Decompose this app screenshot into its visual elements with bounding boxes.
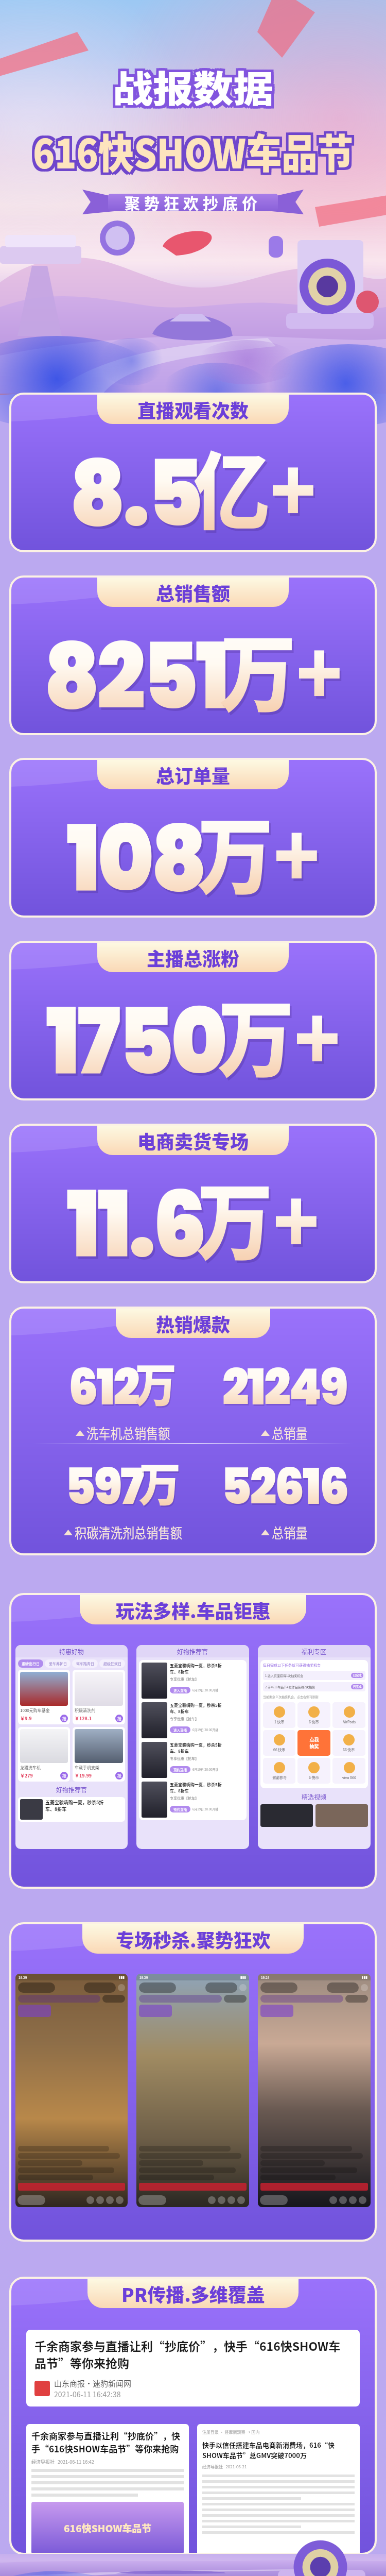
staticText: 战报数据 — [113, 60, 274, 113]
staticText: 万+ — [199, 792, 322, 914]
staticText: 万 — [139, 1448, 181, 1515]
staticText: 19:29 — [19, 1975, 27, 1979]
staticText: 616快SHOW车品节 — [36, 122, 356, 180]
staticText: 万 — [140, 1450, 182, 1516]
staticText: 专享优惠【抢车】 — [170, 1795, 199, 1801]
staticText: 战报数据 — [110, 62, 271, 115]
staticText: 108 — [68, 798, 206, 917]
staticText: 战报数据 — [113, 62, 274, 115]
staticText: 主播总涨粉 — [147, 944, 240, 971]
staticText: 注册登录 · 经摩斯观察 → 国内 — [202, 2429, 260, 2435]
staticText: 21249 — [223, 1353, 348, 1423]
staticText: 万 — [136, 1350, 178, 1417]
staticText: vivo X60 — [342, 1775, 356, 1780]
staticText: 专享优惠【抢车】 — [170, 1716, 199, 1721]
staticText: 福利专区 — [302, 1647, 327, 1656]
staticText: 进入直播 — [173, 1688, 187, 1692]
staticText: 616快SHOW车品节 — [36, 120, 356, 178]
staticText: 总订单量 — [156, 761, 231, 788]
staticText: 五菱宝骏嗨购一夏，秒杀5折 — [170, 1663, 222, 1669]
staticText: 积碳清洗剂 — [75, 1707, 95, 1714]
staticText: 19:29 — [261, 1975, 270, 1979]
staticText: 五菱宝骏嗨购一夏，秒杀5折 — [45, 1799, 104, 1806]
staticText: 597 — [65, 1451, 143, 1521]
staticText: 车、8折车 — [170, 1669, 189, 1675]
staticText: 战报数据 — [115, 60, 277, 113]
staticText: 经济导报社 2021-06-21 — [202, 2464, 247, 2470]
staticText: 爱车养护日 — [49, 1661, 67, 1666]
staticText: AirPods — [343, 1719, 356, 1724]
staticText: 好物推荐官 — [56, 1785, 87, 1794]
staticText: 车载手机支架 — [75, 1765, 99, 1771]
staticText: ￥128.1 — [75, 1715, 92, 1722]
staticText: ▮▮▮ — [119, 1975, 125, 1979]
staticText: 1.进入页面获得1次抽奖机会 — [265, 1673, 351, 1678]
staticText: 已完成 — [353, 1685, 362, 1689]
staticText: 每日完成以下任务就可获得抽奖机会 — [263, 1663, 321, 1668]
staticText: 进入直播 — [173, 1727, 187, 1732]
staticText: 战报数据 — [115, 62, 277, 115]
staticText: 597 — [66, 1453, 144, 1522]
staticText: 19:29 — [139, 1975, 148, 1979]
staticText: 电商卖货专场 — [137, 1127, 249, 1154]
staticText: 万+ — [218, 973, 341, 1094]
staticText: 总销售额 — [156, 579, 231, 606]
staticText: 616快SHOW车品节 — [30, 125, 351, 183]
staticText: 6 快币 — [309, 1719, 319, 1724]
staticText: 重磅出行日 — [22, 1661, 40, 1666]
staticText: 8.5 — [71, 432, 203, 551]
staticText: ￥9.9 — [20, 1715, 32, 1722]
staticText: 6月19日 20:00开播 — [192, 1807, 219, 1811]
staticText: 616快SHOW车品节 — [33, 125, 353, 183]
staticText: 108 — [66, 795, 204, 917]
staticText: 车、8折车 — [45, 1806, 67, 1812]
staticText: 聚势狂欢抄底价 — [125, 191, 261, 213]
staticText: 亿+ — [194, 425, 317, 546]
staticText: 抢 — [62, 1716, 66, 1722]
staticText: 专场秒杀.聚势狂欢 — [116, 1926, 271, 1953]
staticText: 616快SHOW车品节 — [33, 120, 353, 178]
staticText: 亿+ — [195, 427, 319, 549]
staticText: 战报数据 — [110, 57, 271, 110]
staticText: 经济导报社 2021-06-11 16:42 — [31, 2459, 94, 2465]
staticText: 车、8折车 — [170, 1788, 189, 1794]
staticText: 8.5 — [69, 430, 201, 551]
staticText: 616快SHOW车品节 — [36, 125, 356, 183]
staticText: 五菱宝骏嗨购一夏，秒杀5折 — [170, 1742, 222, 1748]
staticText: 1750 — [48, 980, 227, 1099]
staticText: 52616 — [221, 1451, 348, 1521]
staticText: 612 — [68, 1352, 139, 1421]
staticText: 21249 — [222, 1352, 347, 1421]
staticText: 万+ — [220, 607, 343, 729]
staticText: 11.6 — [66, 1161, 204, 1282]
staticText: ￥279 — [20, 1772, 33, 1779]
staticText: 抢 — [117, 1773, 121, 1779]
staticText: 已完成 — [353, 1673, 362, 1677]
staticText: 612 — [69, 1353, 140, 1423]
staticText: 五菱宝骏嗨购一夏，秒杀5折 — [170, 1702, 222, 1708]
staticText: 66 快币 — [343, 1747, 355, 1752]
staticText: 精选视频 — [302, 1792, 327, 1801]
staticText: 超级狂欢日 — [103, 1661, 121, 1666]
staticText: 6月19日 20:00开播 — [192, 1727, 219, 1732]
staticText: 6 快币 — [309, 1775, 319, 1780]
staticText: 车、8折车 — [170, 1748, 189, 1754]
staticText: 万+ — [220, 975, 343, 1097]
staticText: 谢谢参与 — [272, 1775, 287, 1780]
staticText: 战报数据 — [115, 57, 277, 110]
staticText: 战报数据 — [110, 60, 271, 113]
staticText: 52616 — [222, 1453, 349, 1522]
staticText: 山东商报·速豹新闻网 — [54, 2378, 132, 2389]
staticText: 2.带#616车品节#发作品获得2次抽奖 — [265, 1685, 351, 1689]
staticText: 五菱宝骏嗨购一夏，秒杀5折 — [170, 1782, 222, 1788]
staticText: 驾车踏青日 — [76, 1661, 94, 1666]
staticText: 预约直播 — [173, 1807, 187, 1811]
staticText: PR传播.多维覆盖 — [121, 2280, 265, 2307]
staticText: 万+ — [197, 790, 320, 911]
staticText: 1750 — [46, 978, 225, 1099]
staticText: 千余商家参与直播让利“抄底价”，快手“616快SHOW车品节”等你来抢购 — [31, 2429, 184, 2455]
staticText: 千余商家参与直播让利“抄底价”，快手“616快SHOW车品节”等你来抢购 — [34, 2337, 352, 2371]
staticText: 616快SHOW车品节 — [64, 2521, 152, 2535]
staticText: 8251 — [44, 613, 227, 734]
staticText: 总销量 — [272, 1423, 308, 1443]
